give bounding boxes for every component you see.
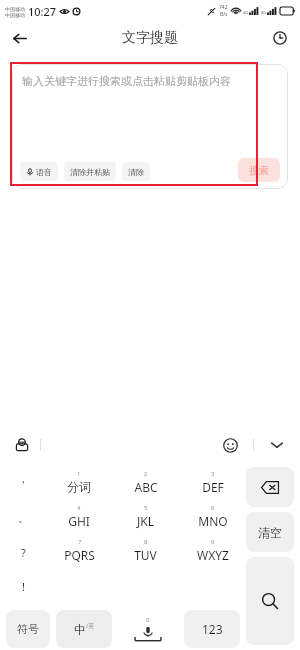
staticText: 中国移动 [5, 6, 25, 12]
staticText: GHI [68, 513, 90, 529]
staticText: 文字搜题 [122, 29, 178, 47]
staticText: 中国移动 [5, 12, 25, 18]
staticText: 2 [144, 470, 148, 478]
staticText: 符号 [17, 622, 39, 636]
button[interactable]: 空格 [118, 610, 178, 648]
button[interactable]: 收起键盘 [264, 432, 290, 458]
button[interactable]: 符号 [6, 610, 50, 648]
staticText: ! [22, 579, 25, 594]
staticText: 6 [211, 504, 215, 512]
button[interactable]: 删除 [246, 467, 294, 507]
staticText: 清空 [258, 525, 282, 540]
button[interactable]: 表情 [218, 433, 242, 457]
staticText: 语音 [36, 167, 52, 177]
button[interactable]: 4 [46, 499, 112, 533]
button[interactable]: 7 [46, 533, 112, 567]
staticText: 4G [243, 10, 249, 15]
staticText: MNO [198, 513, 228, 529]
button[interactable]: 清除 [122, 162, 150, 181]
staticText: B/s [220, 11, 228, 18]
button[interactable]: 5 [112, 499, 179, 533]
button[interactable]: 历史记录 [266, 24, 294, 52]
other: 删除 [261, 481, 279, 494]
staticText: 4 [77, 504, 81, 512]
staticText: JKL [137, 513, 154, 529]
staticText: 742 [219, 4, 228, 11]
staticText: 123 [202, 621, 223, 637]
button[interactable]: ? [3, 535, 43, 569]
button[interactable]: 搜索 [246, 557, 294, 645]
staticText: WXYZ [197, 547, 229, 563]
staticText: /英 [86, 622, 95, 630]
staticText: 4G [261, 10, 267, 15]
button[interactable]: 输入法设置 [10, 433, 34, 457]
staticText: 搜索 [249, 164, 269, 177]
button[interactable]: 清除并粘贴 [64, 162, 116, 181]
staticText: 10:27 [28, 4, 57, 19]
staticText: 8 [144, 538, 148, 546]
staticText: 中 [74, 622, 86, 637]
staticText: 0 [146, 616, 150, 624]
staticText: 分词 [67, 479, 91, 494]
button[interactable]: 清空 [246, 512, 294, 552]
button[interactable]: 。 [3, 501, 43, 535]
staticText: 清除并粘贴 [70, 167, 110, 177]
button[interactable]: 8 [112, 533, 179, 567]
button[interactable]: ! [3, 569, 43, 603]
staticText: 7 [78, 538, 82, 546]
staticText: ? [21, 545, 26, 560]
button[interactable]: 3 [179, 465, 246, 499]
button[interactable]: 搜索 [238, 158, 280, 182]
staticText: 9 [211, 538, 215, 546]
button[interactable]: ' [3, 467, 43, 501]
staticText: ABC [134, 479, 158, 495]
button[interactable]: 9 [179, 533, 246, 567]
button[interactable]: 123 [184, 610, 240, 648]
staticText: 3 [211, 470, 215, 478]
button[interactable]: 1 [46, 465, 112, 499]
button[interactable]: 6 [179, 499, 246, 533]
staticText: 1 [77, 470, 81, 478]
button[interactable]: 返回 [4, 23, 34, 53]
staticText: 输入关键字进行搜索或点击粘贴剪贴板内容 [22, 74, 231, 88]
staticText: 清除 [128, 167, 144, 177]
button[interactable]: 语音 [20, 162, 58, 181]
button[interactable]: 2 [112, 465, 179, 499]
staticText: 。 [18, 511, 29, 525]
staticText: 5 [144, 504, 148, 512]
staticText: PQRS [64, 547, 95, 563]
staticText: ' [22, 477, 25, 492]
staticText: TUV [134, 547, 157, 563]
staticText: DEF [202, 479, 224, 495]
button[interactable]: 中英文切换 [56, 610, 112, 648]
